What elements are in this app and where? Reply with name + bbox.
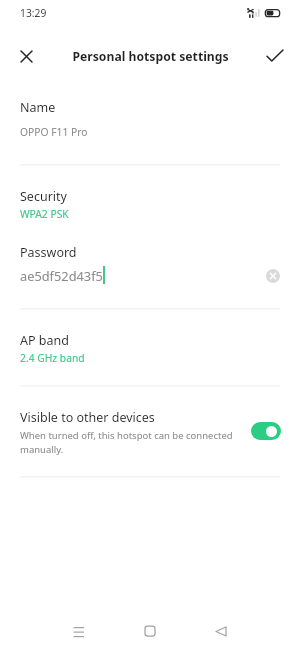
- staticText: Security: [20, 188, 67, 205]
- staticText: WPA2 PSK: [20, 207, 69, 221]
- staticText: ae5df52d43f5: [20, 267, 103, 284]
- button[interactable]: Confirm: [252, 34, 295, 77]
- button[interactable]: Home: [126, 607, 174, 650]
- button[interactable]: Visible to other devices: [251, 422, 281, 440]
- staticText: AP band: [20, 332, 69, 349]
- staticText: When turned off, this hotspot can be con…: [20, 429, 233, 456]
- staticText: Personal hotspot settings: [72, 48, 229, 65]
- staticText: Name: [20, 99, 56, 116]
- staticText: Visible to other devices: [20, 409, 155, 426]
- button[interactable]: Clear password: [262, 265, 284, 287]
- staticText: Password: [20, 244, 77, 261]
- staticText: 2.4 GHz band: [20, 351, 85, 365]
- button[interactable]: Recent apps: [54, 607, 102, 650]
- staticText: 13:29: [20, 6, 47, 20]
- staticText: OPPO F11 Pro: [20, 125, 88, 139]
- button[interactable]: Back: [197, 607, 245, 650]
- button[interactable]: Close: [5, 34, 48, 77]
